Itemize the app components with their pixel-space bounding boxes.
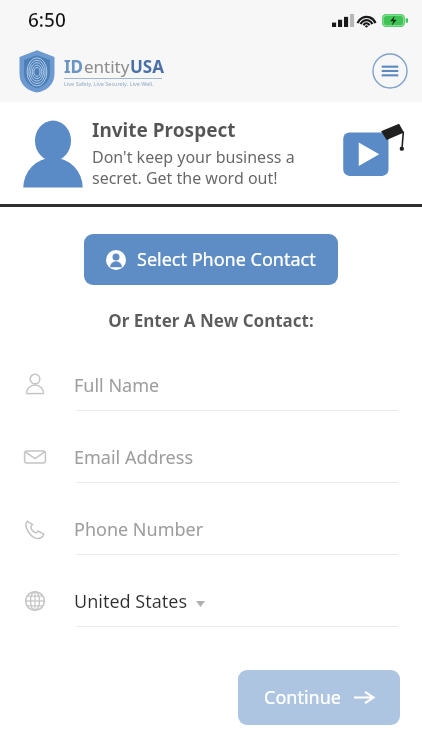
button[interactable]: Full Name <box>0 360 422 432</box>
staticText: Email Address <box>74 445 194 470</box>
staticText: Live Safely. Live Securely. Live Well. <box>64 80 154 87</box>
staticText: United States <box>74 589 188 614</box>
button[interactable]: Play training video <box>342 122 404 184</box>
button[interactable]: Select Phone Contact <box>84 234 338 285</box>
staticText: Don't keep your business a secret. Get t… <box>92 146 295 189</box>
staticText: entity <box>84 55 130 78</box>
staticText: ID <box>64 55 84 78</box>
staticText: Select Phone Contact <box>137 247 316 272</box>
staticText: Or Enter A New Contact: <box>0 309 422 332</box>
button[interactable]: Email Address <box>0 432 422 504</box>
staticText: Invite Prospect <box>92 117 236 143</box>
staticText: Phone Number <box>74 517 204 542</box>
staticText: Continue <box>264 685 341 710</box>
button[interactable]: Invite Prospect <box>0 102 422 204</box>
button[interactable]: Menu <box>372 53 408 89</box>
button[interactable]: Continue <box>238 670 400 725</box>
staticText: Full Name <box>74 373 160 398</box>
staticText: 6:50 <box>28 7 66 33</box>
button[interactable]: United States <box>0 576 422 648</box>
button[interactable]: Phone Number <box>0 504 422 576</box>
staticText: USA <box>130 55 164 78</box>
